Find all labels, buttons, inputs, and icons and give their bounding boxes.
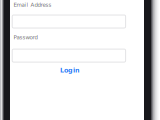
staticText: Login xyxy=(60,67,80,74)
staticText: Password xyxy=(14,34,38,41)
staticText: Email Address xyxy=(14,2,52,8)
button[interactable]: Login xyxy=(13,65,127,75)
